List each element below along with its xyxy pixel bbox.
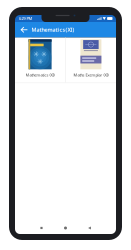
staticText: Mathematics (XI) (26, 72, 55, 78)
staticText: Maths Exemplar (XI) (73, 72, 108, 78)
staticText: 4:29 PM (18, 16, 32, 21)
button[interactable]: Back (86, 223, 93, 232)
button[interactable]: Home (62, 223, 69, 232)
staticText: Mathematics(XI) (31, 26, 74, 33)
button[interactable]: Mathematics (XI) (15, 36, 65, 83)
button[interactable]: Back (16, 22, 31, 37)
button[interactable]: Maths Exemplar (XI) (66, 36, 116, 83)
button[interactable]: Recents (38, 223, 45, 232)
